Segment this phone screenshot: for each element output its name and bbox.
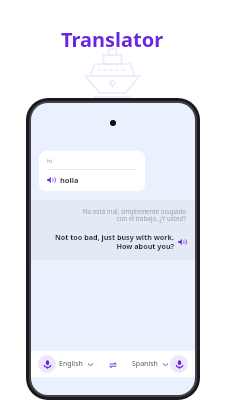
button[interactable]: Microphone — [170, 355, 188, 373]
staticText: Spanish — [132, 359, 158, 369]
staticText: English — [59, 359, 83, 369]
staticText: hi — [47, 157, 53, 165]
button[interactable]: hi — [39, 151, 145, 191]
staticText: Not too bad, just busy with work. How ab… — [54, 232, 174, 252]
staticText: Translator — [61, 26, 164, 53]
staticText: No está mal, simplemente ocupado con el … — [83, 207, 186, 223]
button[interactable]: Microphone — [38, 355, 56, 373]
button[interactable]: Spanish — [130, 357, 170, 371]
staticText: holla — [60, 175, 79, 185]
button[interactable]: English — [57, 357, 95, 371]
button[interactable]: Swap languages — [106, 358, 119, 371]
